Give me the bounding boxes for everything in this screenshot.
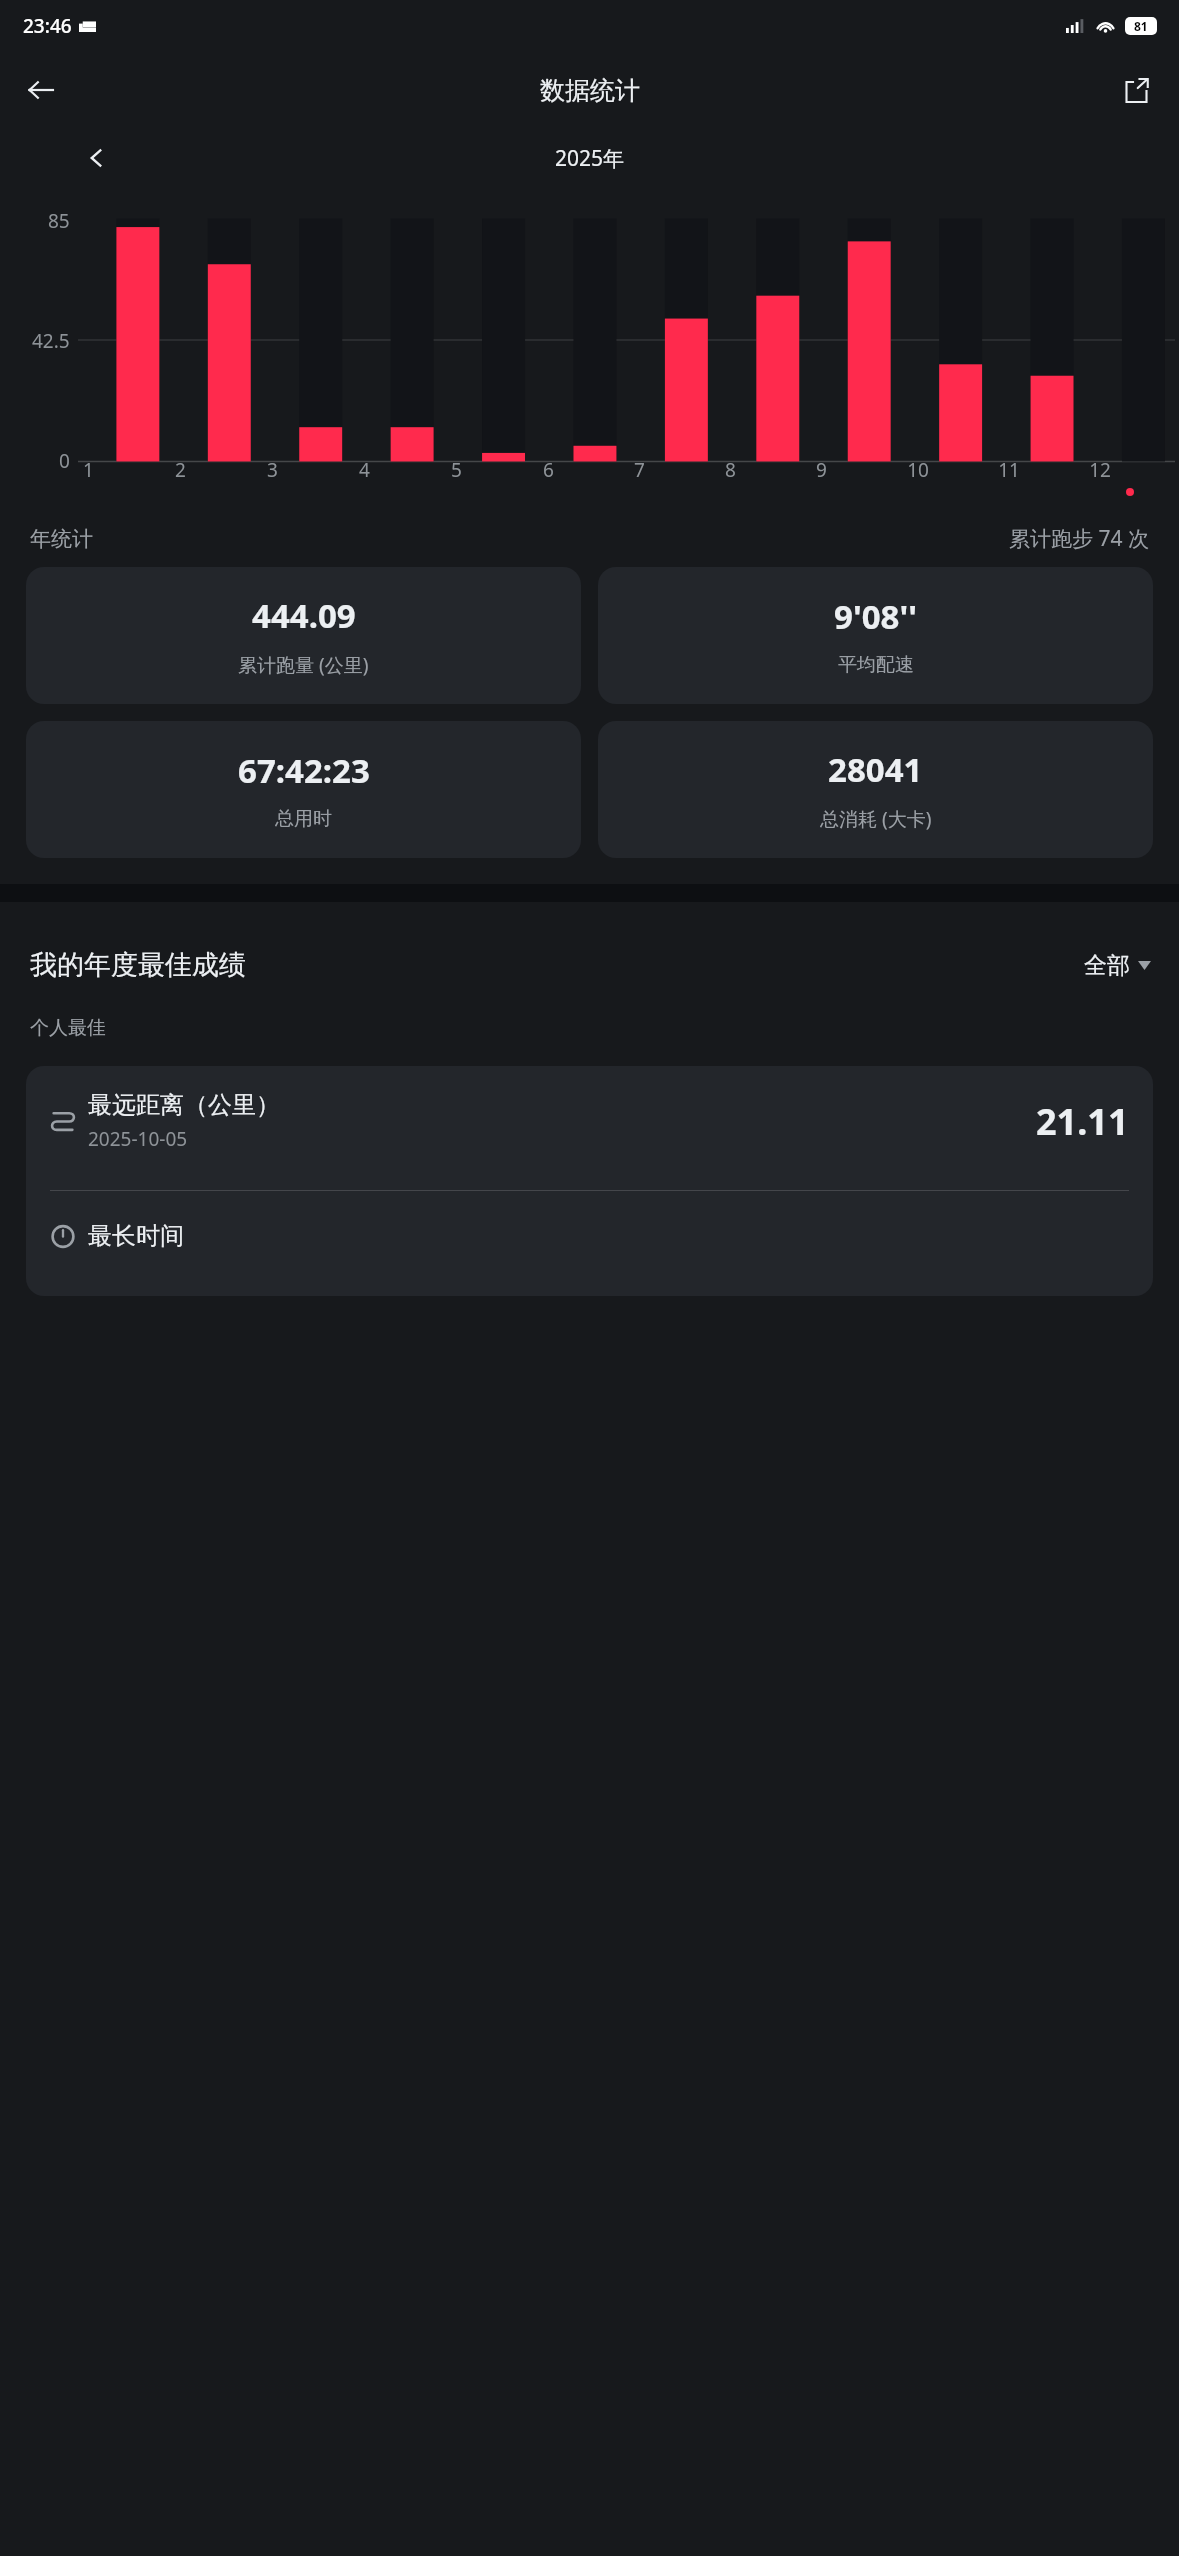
- staticText: 23:46: [23, 13, 72, 39]
- staticText: 总用时: [275, 807, 332, 831]
- staticText: 我的年度最佳成绩: [30, 948, 246, 982]
- staticText: 8: [725, 457, 736, 483]
- button[interactable]: 最远距离（公里）: [50, 1090, 1129, 1152]
- staticText: 累计跑量 (公里): [238, 652, 369, 678]
- button[interactable]: 9'08'': [598, 567, 1153, 704]
- staticText: 平均配速: [838, 653, 914, 677]
- staticText: 4: [359, 457, 370, 483]
- staticText: 全部: [1084, 951, 1130, 980]
- button[interactable]: 28041: [598, 721, 1153, 858]
- button[interactable]: Share: [1109, 63, 1163, 117]
- staticText: 最远距离（公里）: [88, 1090, 280, 1120]
- staticText: 21.11: [1036, 1097, 1129, 1146]
- staticText: 1: [83, 457, 94, 483]
- staticText: 个人最佳: [30, 1016, 106, 1040]
- staticText: 总消耗 (大卡): [820, 806, 932, 832]
- staticText: 12: [1089, 457, 1111, 483]
- staticText: 3: [267, 457, 278, 483]
- staticText: 9'08'': [834, 594, 917, 639]
- button[interactable]: 全部: [1084, 951, 1151, 980]
- staticText: 累计跑步 74 次: [1009, 524, 1149, 553]
- staticText: 2025年: [555, 144, 625, 173]
- staticText: 9: [816, 457, 827, 483]
- staticText: 5: [451, 457, 462, 483]
- staticText: 6: [543, 457, 554, 483]
- staticText: 28041: [828, 747, 923, 792]
- staticText: 2025-10-05: [88, 1126, 188, 1152]
- staticText: 10: [907, 457, 929, 483]
- button[interactable]: 444.09: [26, 567, 581, 704]
- staticText: 444.09: [252, 593, 356, 638]
- staticText: 81: [1134, 18, 1148, 34]
- staticText: 年统计: [30, 526, 93, 552]
- staticText: 42.5: [32, 328, 70, 354]
- button[interactable]: Back: [14, 63, 68, 117]
- staticText: 最长时间: [88, 1221, 184, 1251]
- button[interactable]: Previous year: [74, 136, 118, 180]
- staticText: 0: [59, 448, 70, 474]
- staticText: 85: [48, 208, 70, 234]
- staticText: 67:42:23: [238, 748, 370, 793]
- button[interactable]: 67:42:23: [26, 721, 581, 858]
- staticText: 7: [634, 457, 645, 483]
- staticText: 数据统计: [540, 75, 640, 106]
- staticText: 11: [998, 457, 1020, 483]
- staticText: 2: [175, 457, 186, 483]
